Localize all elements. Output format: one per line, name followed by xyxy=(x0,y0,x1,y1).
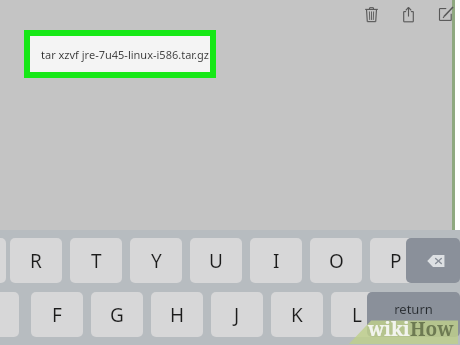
button[interactable]: R xyxy=(10,238,62,283)
button[interactable]: U xyxy=(190,238,242,283)
button[interactable]: J xyxy=(211,292,263,337)
button[interactable]: Compose xyxy=(430,2,460,26)
staticText: O xyxy=(329,248,344,274)
button[interactable]: F xyxy=(31,292,83,337)
staticText: J xyxy=(234,302,240,328)
staticText: return xyxy=(394,300,433,318)
button[interactable]: H xyxy=(151,292,203,337)
staticText: R xyxy=(30,248,42,274)
staticText: U xyxy=(209,248,223,274)
button[interactable]: return xyxy=(367,292,460,337)
button[interactable]: D xyxy=(0,292,19,337)
staticText: G xyxy=(110,302,124,328)
staticText: wiki xyxy=(368,316,410,342)
button[interactable]: T xyxy=(70,238,122,283)
button[interactable]: Y xyxy=(130,238,182,283)
staticText: I xyxy=(273,248,280,274)
staticText: K xyxy=(291,302,303,328)
button[interactable] xyxy=(0,238,6,283)
button[interactable]: Backspace xyxy=(406,238,460,283)
button[interactable]: L xyxy=(331,292,383,337)
button[interactable]: tar xzvf jre-7u45-linux-i586.tar.gz xyxy=(30,36,210,72)
button[interactable]: G xyxy=(91,292,143,337)
staticText: Y xyxy=(151,248,162,274)
button[interactable]: K xyxy=(271,292,323,337)
button[interactable]: Share xyxy=(393,2,423,26)
staticText: L xyxy=(352,302,362,328)
button[interactable]: O xyxy=(310,238,362,283)
staticText: P xyxy=(390,248,402,274)
staticText: T xyxy=(91,248,102,274)
button[interactable]: Delete xyxy=(356,2,386,26)
staticText: H xyxy=(170,302,185,328)
button[interactable]: I xyxy=(250,238,302,283)
button[interactable]: P xyxy=(370,238,422,283)
staticText: tar xzvf jre-7u45-linux-i586.tar.gz xyxy=(41,47,209,62)
staticText: F xyxy=(52,302,62,328)
staticText: How xyxy=(410,316,454,342)
